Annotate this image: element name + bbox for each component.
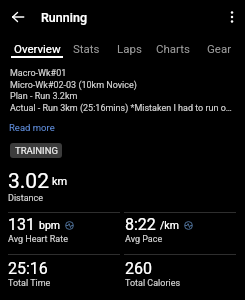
staticText: 25:16: [8, 259, 48, 278]
button[interactable]: TRAINING: [10, 143, 62, 158]
staticText: Read more: [9, 122, 55, 133]
button[interactable]: Stats: [65, 34, 107, 60]
staticText: Stats: [73, 42, 100, 55]
staticText: Total Time: [8, 278, 51, 289]
staticText: Running: [41, 10, 87, 25]
staticText: 3.02: [8, 169, 49, 194]
staticText: bpm: [39, 219, 60, 231]
staticText: Plan - Run 3.2km: [10, 91, 245, 102]
button[interactable]: 3.02: [0, 169, 245, 205]
staticText: Overview: [14, 42, 61, 55]
staticText: km: [52, 175, 68, 188]
button[interactable]: 25:16: [8, 259, 122, 289]
staticText: TRAINING: [15, 145, 58, 156]
staticText: /km: [160, 219, 179, 231]
staticText: Distance: [8, 193, 44, 204]
staticText: Charts: [156, 42, 190, 55]
button[interactable]: Charts: [149, 34, 197, 60]
button[interactable]: 8:22: [122, 215, 236, 245]
button[interactable]: More options: [220, 5, 244, 29]
button[interactable]: Gear: [199, 34, 239, 60]
button[interactable]: Read more: [9, 122, 55, 133]
staticText: Macro-Wk#01: [10, 68, 245, 79]
button[interactable]: 131: [8, 215, 122, 245]
staticText: 260: [125, 259, 152, 278]
button[interactable]: Laps: [109, 34, 149, 60]
button[interactable]: 260: [122, 259, 236, 289]
staticText: 131: [8, 215, 35, 234]
button[interactable]: Back: [6, 5, 30, 29]
staticText: Micro-Wk#02-03 (10km Novice): [10, 80, 245, 91]
staticText: Laps: [117, 42, 142, 55]
button[interactable]: Overview: [6, 34, 68, 60]
staticText: Total Calories: [125, 278, 181, 289]
staticText: Avg Heart Rate: [8, 234, 68, 245]
staticText: Actual - Run 3km (25:16mins) *Mistaken I…: [10, 103, 245, 114]
staticText: Avg Pace: [125, 234, 163, 245]
staticText: Gear: [207, 42, 232, 55]
staticText: 8:22: [125, 215, 156, 234]
